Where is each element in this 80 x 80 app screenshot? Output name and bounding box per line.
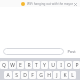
staticText: Q — [2, 62, 6, 69]
staticText: G — [39, 72, 43, 79]
staticText: F — [31, 72, 34, 79]
staticText: WiFi hanging out with the mayor — [27, 2, 74, 6]
button[interactable]: H — [45, 71, 52, 79]
staticText: O — [67, 62, 71, 69]
staticText: P — [75, 62, 79, 69]
staticText: L — [71, 72, 74, 79]
button[interactable]: Dismiss — [73, 2, 77, 6]
button[interactable]: K — [61, 71, 68, 79]
staticText: K — [63, 72, 67, 79]
button[interactable]: U — [49, 61, 56, 69]
staticText: S — [15, 72, 18, 79]
button[interactable]: A — [4, 71, 12, 79]
button[interactable]: P — [73, 61, 80, 69]
button[interactable] — [3, 48, 64, 55]
button[interactable]: E — [17, 61, 24, 69]
staticText: H — [47, 72, 51, 79]
staticText: T — [35, 62, 38, 69]
staticText: W — [10, 62, 15, 69]
button[interactable]: L — [69, 71, 76, 79]
button[interactable]: I — [57, 61, 64, 69]
button[interactable]: Y — [41, 61, 48, 69]
button[interactable]: WiFi hanging out with the mayor — [0, 0, 80, 7]
button[interactable]: G — [37, 71, 44, 79]
button[interactable]: Post — [66, 48, 77, 55]
button[interactable]: F — [29, 71, 36, 79]
staticText: Y — [43, 62, 46, 69]
staticText: R — [27, 62, 31, 69]
button[interactable]: D — [21, 71, 28, 79]
button[interactable]: R — [25, 61, 32, 69]
staticText: Post — [67, 49, 76, 54]
staticText: A — [6, 72, 10, 79]
button[interactable]: W — [9, 61, 16, 69]
staticText: U — [51, 62, 55, 69]
staticText: J — [56, 72, 58, 79]
button[interactable]: T — [33, 61, 40, 69]
button[interactable]: Q — [0, 61, 8, 69]
staticText: E — [19, 62, 22, 69]
button[interactable]: O — [65, 61, 72, 69]
staticText: I — [60, 62, 62, 69]
staticText: D — [23, 72, 27, 79]
button[interactable]: S — [13, 71, 20, 79]
button[interactable]: J — [53, 71, 60, 79]
